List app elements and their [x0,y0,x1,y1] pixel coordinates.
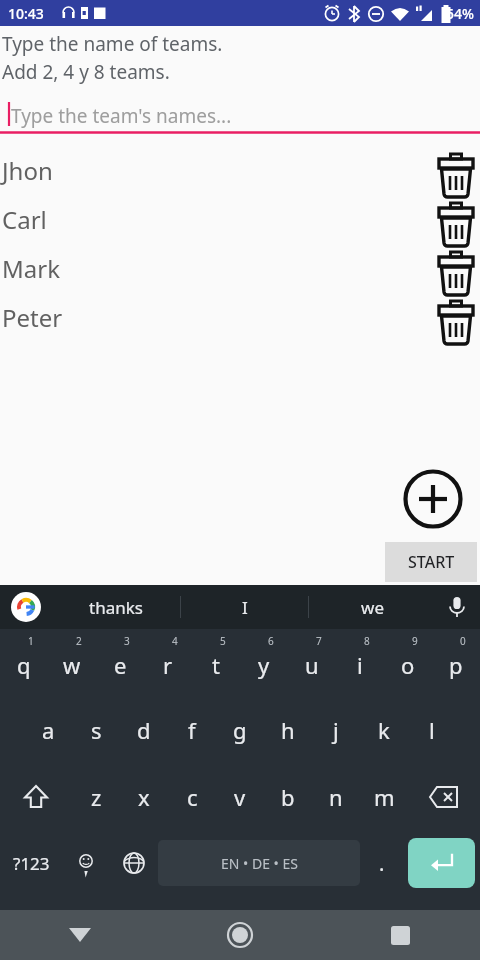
button[interactable]: Home [160,910,320,960]
button[interactable]: Google [10,591,42,623]
staticText: Peter [2,301,432,334]
staticText: ?123 [13,852,50,875]
staticText: o [401,650,415,680]
staticText: a [42,715,55,745]
staticText: v [234,782,246,812]
staticText: l [429,715,435,745]
staticText: 5 [220,634,226,648]
button[interactable]: Type the team's names... [0,98,480,134]
staticText: Add 2, 4 y 8 teams. [2,59,170,85]
button[interactable]: Delete Carl [432,195,480,244]
staticText: f [188,715,196,745]
staticText: t [212,650,220,680]
button[interactable]: Voice input [440,590,474,624]
button[interactable]: d [120,696,168,763]
staticText: q [17,650,31,680]
staticText: 3 [124,634,130,648]
staticText: 6 [268,634,274,648]
button[interactable]: Change language [110,830,158,896]
button[interactable]: Enter [408,838,475,888]
button[interactable]: k [360,696,408,763]
staticText: 7 [316,634,322,648]
button[interactable]: I [181,585,308,629]
staticText: y [258,650,270,680]
staticText: n [329,782,343,812]
staticText: 2 [76,634,82,648]
staticText: j [333,715,339,745]
staticText: Carl [2,203,432,236]
button[interactable]: Backspace [408,763,480,830]
staticText: e [114,650,127,680]
button[interactable]: h [264,696,312,763]
staticText: Mark [2,252,432,285]
staticText: Jhon [2,154,432,187]
button[interactable]: x [120,763,168,830]
staticText: g [233,715,247,745]
button[interactable]: s [72,696,120,763]
button[interactable]: 4 [144,629,192,696]
button[interactable]: f [168,696,216,763]
staticText: r [163,650,173,680]
button[interactable]: Delete Mark [432,244,480,293]
button[interactable]: 2 [48,629,96,696]
staticText: . [379,850,385,877]
staticText: thanks [89,596,143,619]
button[interactable]: thanks [52,585,180,629]
staticText: 9 [412,634,418,648]
button[interactable]: 7 [288,629,336,696]
button[interactable]: m [360,763,408,830]
button[interactable]: z [72,763,120,830]
staticText: Type the team's names... [11,103,232,129]
button[interactable]: 8 [336,629,384,696]
button[interactable]: g [216,696,264,763]
button[interactable]: Back [0,910,160,960]
button[interactable]: l [408,696,456,763]
button[interactable]: 9 [384,629,432,696]
button[interactable]: Delete Jhon [432,146,480,195]
button[interactable]: j [312,696,360,763]
staticText: EN • DE • ES [221,854,298,873]
button[interactable]: Add team [401,467,465,531]
staticText: START [408,551,455,573]
staticText: p [449,650,463,680]
button[interactable]: a [24,696,72,763]
button[interactable]: we [309,585,436,629]
staticText: i [357,650,363,680]
staticText: 54% [446,4,474,23]
button[interactable]: c [168,763,216,830]
staticText: h [281,715,295,745]
button[interactable]: Emoji and comma [62,830,110,896]
staticText: 4 [172,634,178,648]
staticText: we [361,596,384,619]
button[interactable]: . [360,830,403,896]
staticText: c [187,782,198,812]
staticText: w [63,650,81,680]
button[interactable]: Shift [0,763,72,830]
staticText: 8 [364,634,370,648]
button[interactable]: 5 [192,629,240,696]
button[interactable]: 6 [240,629,288,696]
staticText: I [242,596,248,619]
staticText: Type the name of teams. [2,31,223,57]
button[interactable]: 3 [96,629,144,696]
button[interactable]: EN • DE • ES [158,840,360,886]
staticText: 0 [460,634,466,648]
button[interactable]: 0 [432,629,480,696]
staticText: z [91,782,102,812]
button[interactable]: Delete Peter [432,293,480,342]
button[interactable]: b [264,763,312,830]
staticText: m [374,782,395,812]
button[interactable]: n [312,763,360,830]
button[interactable]: Recent apps [320,910,480,960]
staticText: k [378,715,390,745]
staticText: d [137,715,151,745]
staticText: x [138,782,150,812]
button[interactable]: v [216,763,264,830]
staticText: b [281,782,295,812]
button[interactable]: ?123 [0,830,62,896]
staticText: 1 [28,634,34,648]
button[interactable]: 1 [0,629,48,696]
staticText: u [305,650,319,680]
staticText: s [91,715,102,745]
button[interactable]: START [385,542,477,582]
